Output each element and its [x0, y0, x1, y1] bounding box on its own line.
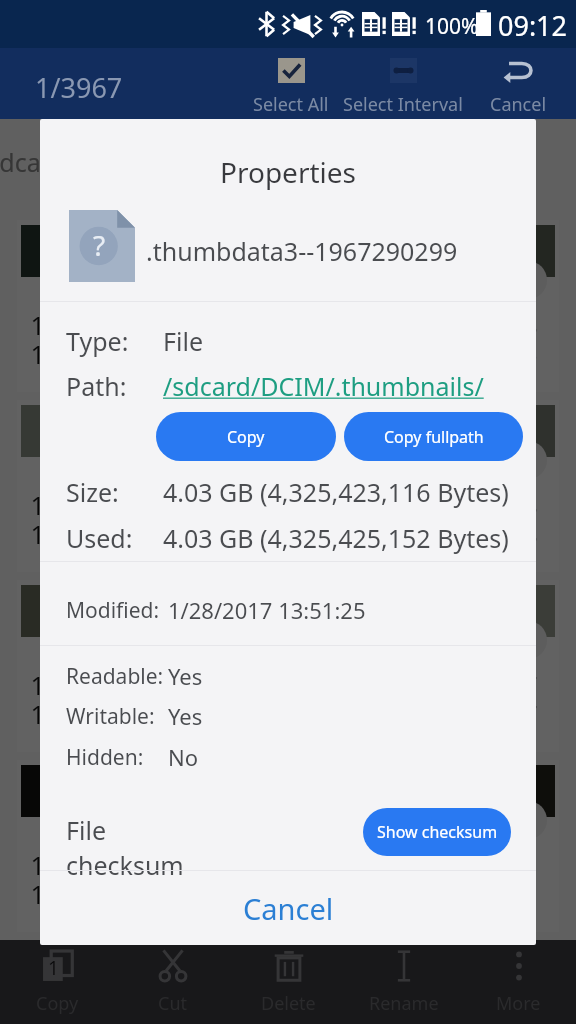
button[interactable]: 1415843038 [199, 400, 377, 572]
staticText: 1415843038 [195, 488, 373, 522]
staticText: Used: [66, 521, 133, 555]
button[interactable]: Cut [115, 940, 230, 1024]
staticText: Writable: [66, 702, 155, 731]
staticText: No [168, 742, 199, 772]
staticText: Copy [36, 991, 79, 1016]
staticText: Delete [261, 991, 316, 1016]
button[interactable]: 1 [0, 940, 115, 1024]
staticText: 1402460731 [377, 877, 555, 911]
staticText: 1415843038 [195, 517, 373, 551]
staticText: 1415843038 [13, 488, 191, 522]
staticText: Cancel [490, 92, 547, 117]
staticText: 1402460731 [195, 848, 373, 882]
button[interactable]: Copy fullpath [344, 412, 523, 461]
staticText: 1402460731 [13, 877, 191, 911]
staticText: Yes [168, 701, 203, 731]
staticText: Select All [253, 92, 329, 117]
button[interactable]: 1410267867 [17, 580, 195, 752]
staticText: 1417262865 [195, 337, 373, 371]
staticText: Size: [66, 475, 119, 509]
staticText: Copy [227, 426, 265, 448]
button[interactable]: Select Interval [338, 48, 468, 119]
staticText: 1/3967 [35, 69, 123, 106]
staticText: Path: [66, 369, 127, 403]
staticText: Hidden: [66, 743, 144, 772]
button[interactable]: 1410267867 [199, 580, 377, 752]
staticText: Select Interval [343, 92, 463, 117]
button[interactable]: 1417262808 [199, 940, 377, 1024]
staticText: 1417262808 [377, 308, 555, 342]
staticText: More [496, 991, 541, 1016]
button[interactable]: 1417262808 [381, 940, 559, 1024]
staticText: Type: [66, 324, 129, 358]
staticText: Cancel [243, 889, 334, 928]
staticText: Cut [158, 991, 187, 1016]
staticText: Show checksum [377, 821, 498, 843]
button[interactable]: 1417262808 [17, 940, 195, 1024]
staticText: 1415843038 [13, 517, 191, 551]
button[interactable]: Show checksum [363, 808, 511, 856]
staticText: 1410267867 [13, 668, 191, 702]
staticText: 1410267867 [377, 697, 555, 731]
button[interactable]: Rename [346, 940, 461, 1024]
staticText: 1417262865 [13, 337, 191, 371]
staticText: 1410267867 [195, 697, 373, 731]
button[interactable]: 1417262808 [199, 220, 377, 392]
button[interactable]: Delete [231, 940, 346, 1024]
staticText: 09:12 [498, 7, 568, 44]
staticText: Yes [168, 661, 203, 691]
staticText: 1417262808 [13, 308, 191, 342]
staticText: 4.03 GB (4,325,423,116 Bytes) [163, 475, 509, 509]
staticText: ? [93, 226, 106, 264]
staticText: 1/28/2017 13:51:25 [168, 595, 366, 625]
staticText: File [163, 324, 203, 358]
button[interactable]: 1402460731 [17, 760, 195, 932]
button[interactable]: 1402460731 [199, 760, 377, 932]
button[interactable]: Select All [234, 48, 348, 119]
staticText: 1415843038 [377, 517, 555, 551]
button[interactable]: Copy [156, 412, 336, 461]
staticText: File checksum [66, 813, 191, 883]
button[interactable]: Cancel [461, 48, 575, 119]
staticText: Copy fullpath [384, 426, 484, 448]
staticText: /sdcard/DCIM/.thumbnails/ [163, 369, 484, 403]
staticText: 1410267867 [195, 668, 373, 702]
staticText: .thumbdata3--1967290299 [146, 234, 458, 268]
staticText: 1415843038 [377, 488, 555, 522]
staticText: 1402460731 [377, 848, 555, 882]
button[interactable]: More [461, 940, 576, 1024]
staticText: Modified: [66, 596, 160, 625]
staticText: 100% [425, 12, 479, 41]
staticText: 1402460731 [13, 848, 191, 882]
button[interactable]: 1415843038 [17, 400, 195, 572]
staticText: Readable: [66, 662, 164, 691]
button[interactable]: 1402460731 [381, 760, 559, 932]
staticText: Rename [369, 991, 439, 1016]
staticText: /sdcard [0, 145, 66, 179]
staticText: 1410267867 [377, 668, 555, 702]
button[interactable]: 1415843038 [381, 400, 559, 572]
staticText: 1417262808 [195, 308, 373, 342]
button[interactable]: 1417262808 [17, 220, 195, 392]
staticText: 1 [48, 955, 59, 981]
button[interactable]: Cancel [40, 871, 536, 945]
button[interactable]: 1410267867 [381, 580, 559, 752]
staticText: 1410267867 [13, 697, 191, 731]
staticText: 1402460731 [195, 877, 373, 911]
staticText: 1417262865 [377, 337, 555, 371]
button[interactable]: 1417262808 [381, 220, 559, 392]
staticText: Properties [40, 153, 536, 191]
staticText: 4.03 GB (4,325,425,152 Bytes) [163, 521, 509, 555]
